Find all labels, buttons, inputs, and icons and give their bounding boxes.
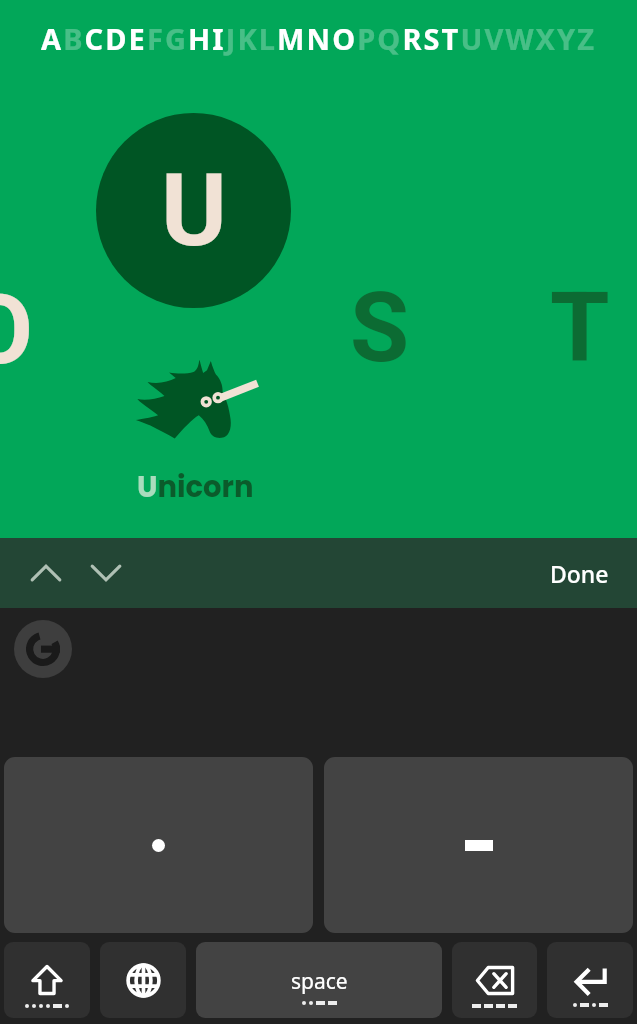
button[interactable]: U [96,113,291,308]
staticText: ABCDEFGHIJKLMNOPQRSTUVWXYZ [41,19,597,58]
button[interactable]: Dash [324,757,633,933]
staticText: T [550,272,610,385]
button[interactable]: Previous [20,547,72,599]
staticText: S [350,272,410,385]
button[interactable]: Done [544,550,615,597]
staticText: space [291,967,348,996]
button[interactable]: Shift [4,942,90,1018]
staticText: Unicorn [137,467,254,508]
staticText: Done [550,558,609,589]
button[interactable]: Backspace [452,942,537,1018]
button[interactable]: space [196,942,442,1018]
button[interactable]: Next [80,547,132,599]
button[interactable]: Language [100,942,186,1018]
button[interactable]: Dot [4,757,313,933]
button[interactable]: Enter [547,942,633,1018]
staticText: U [161,152,227,269]
button[interactable]: Google [14,620,72,678]
staticText: O [0,273,33,387]
